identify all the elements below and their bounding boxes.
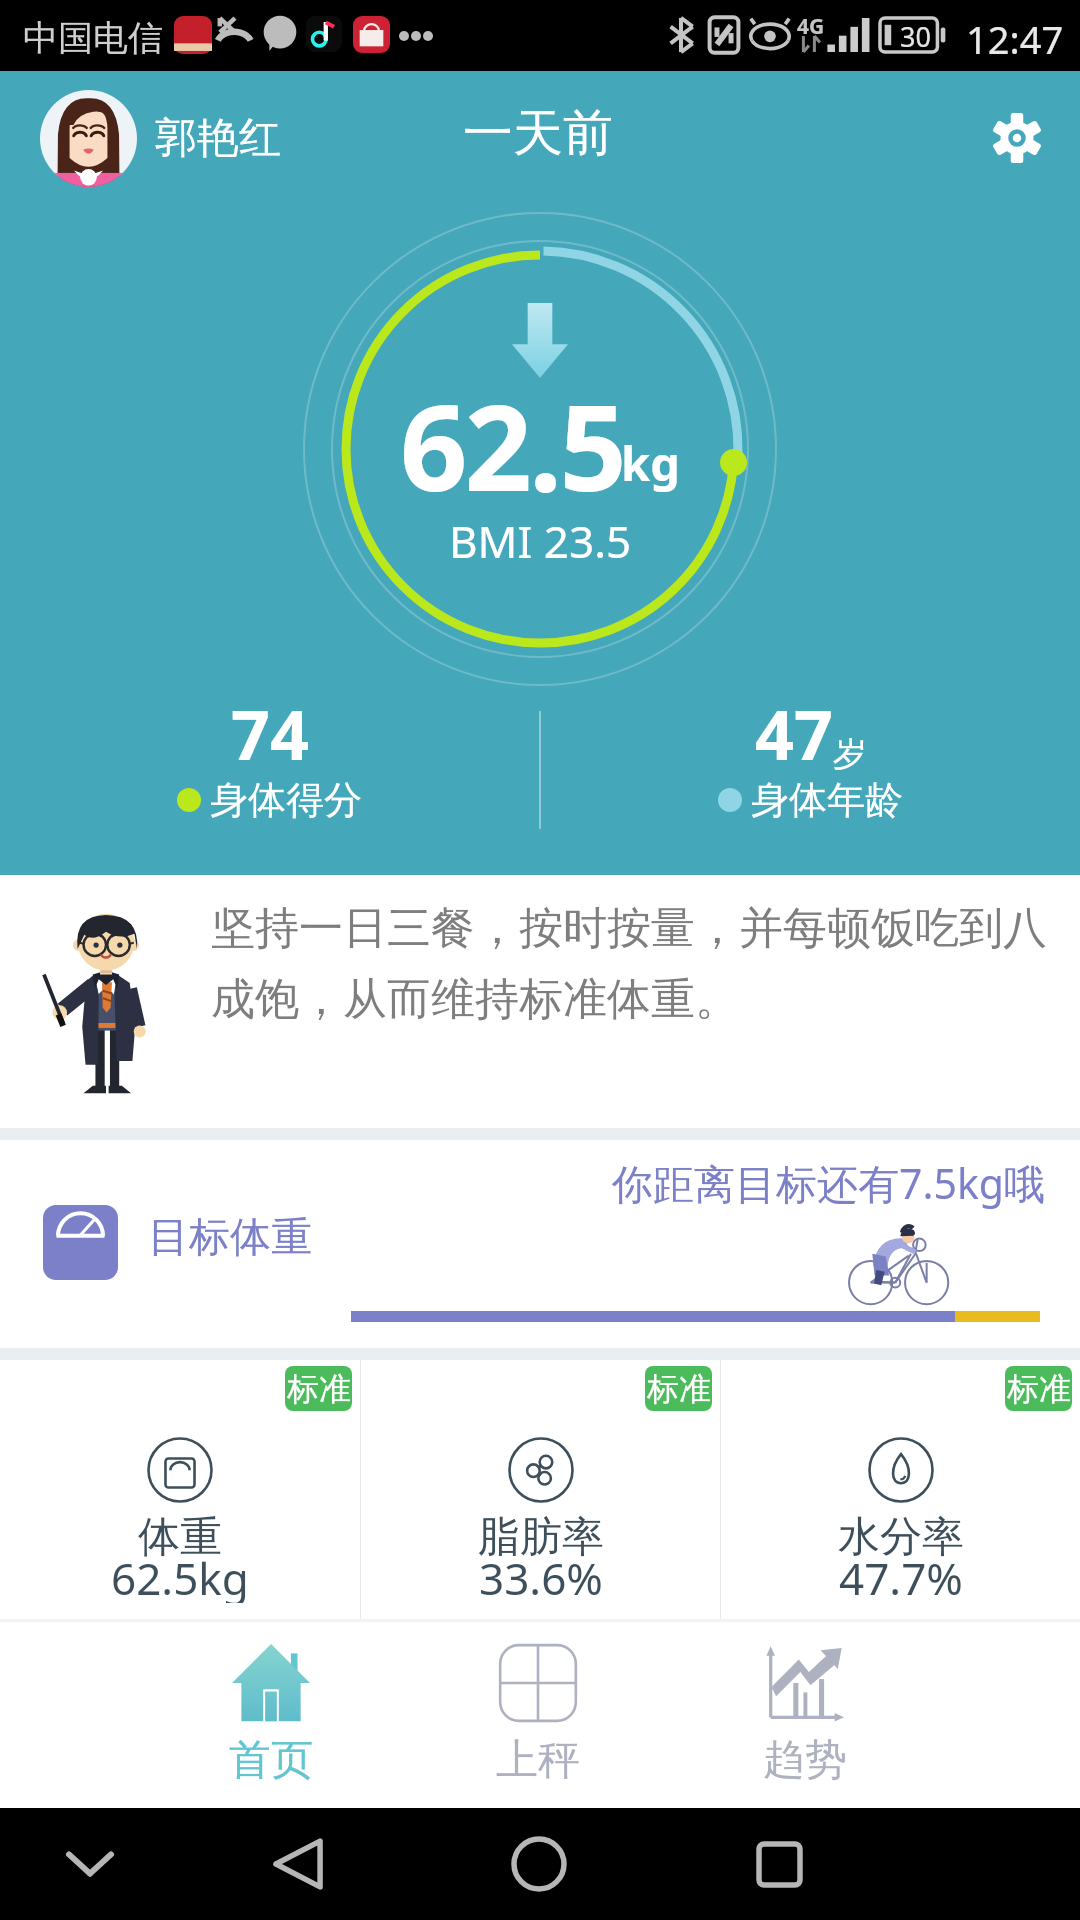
button[interactable]: 坚持一日三餐，按时按量，并每顿饭吃到八成饱，从而维持标准体重。 [0,875,1080,1128]
staticText: 水分率 [838,1511,964,1564]
button[interactable]: Home [479,1808,599,1920]
staticText: 标准 [647,1369,711,1409]
button[interactable]: 标准 [0,1360,360,1619]
staticText: 33.6% [479,1548,603,1603]
button[interactable]: 74 [0,687,539,852]
staticText: 身体年龄 [751,776,903,824]
button[interactable]: 标准 [721,1360,1080,1619]
staticText: 47.7% [839,1548,963,1603]
staticText: 你距离目标还有7.5kg哦 [612,1155,1046,1211]
staticText: 标准 [287,1369,351,1409]
staticText: 62.5kg [111,1548,249,1603]
staticText: 74 [231,687,309,780]
button[interactable]: 郭艳红 [0,71,301,206]
staticText: 47 [755,687,833,780]
staticText: 岁 [833,733,867,776]
button[interactable]: Hide keyboard [30,1808,150,1920]
button[interactable]: 47 [541,687,1080,852]
staticText: 身体得分 [210,776,362,824]
button[interactable]: Back [238,1808,358,1920]
staticText: 30 [900,18,931,52]
staticText: 上秤 [496,1734,580,1787]
staticText: 郭艳红 [155,112,281,165]
staticText: 12:47 [966,13,1064,65]
staticText: 中国电信 [23,16,163,60]
staticText: 62.5 [400,365,624,526]
staticText: 脂肪率 [478,1511,604,1564]
staticText: 目标体重 [148,1212,312,1264]
button[interactable]: 目标体重 [0,1140,1080,1348]
staticText: BMI 23.5 [449,511,632,571]
staticText: 标准 [1007,1369,1071,1409]
staticText: 首页 [229,1734,313,1787]
button[interactable]: 标准 [361,1360,720,1619]
staticText: 趋势 [763,1734,847,1787]
staticText: 坚持一日三餐，按时按量，并每顿饭吃到八成饱，从而维持标准体重。 [211,901,1050,1027]
button[interactable]: 首页 [137,1622,404,1808]
staticText: 体重 [138,1511,222,1564]
button[interactable]: Recent apps [719,1808,839,1920]
button[interactable]: Settings [972,93,1062,183]
button[interactable]: 上秤 [404,1622,671,1808]
staticText: 4G [797,12,825,41]
staticText: kg [621,431,680,495]
staticText: 一天前 [463,102,613,165]
button[interactable]: 趋势 [671,1622,938,1808]
